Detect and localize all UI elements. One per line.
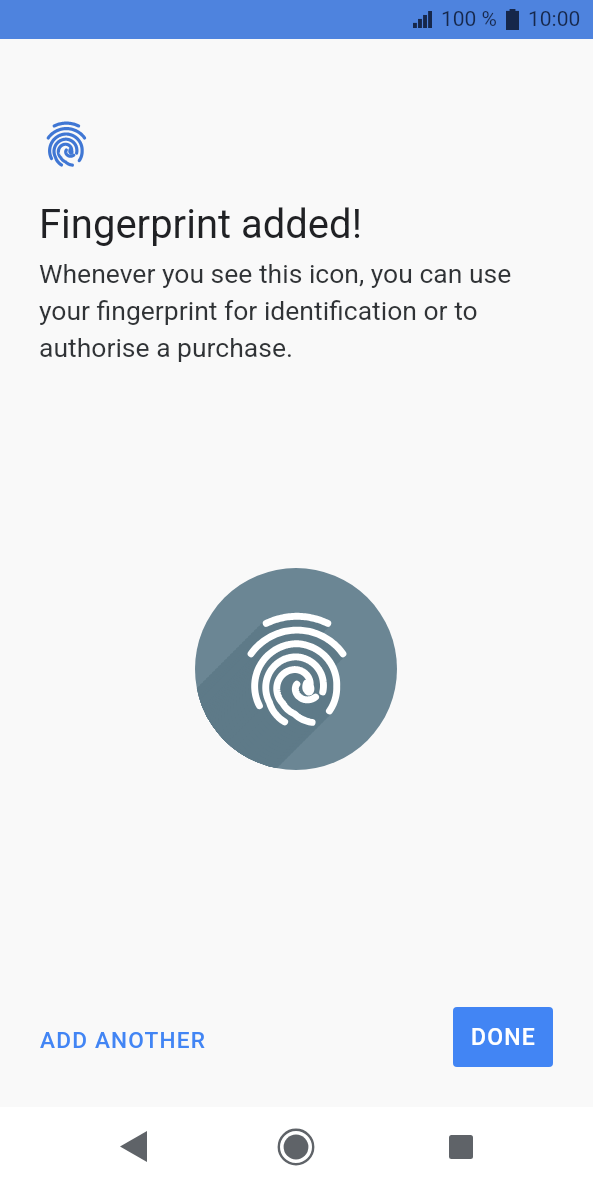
staticText: 100 % [441,7,497,32]
button[interactable]: ADD ANOTHER [24,1015,223,1065]
staticText: ADD ANOTHER [40,1027,207,1053]
staticText: Whenever you see this icon, you can use … [39,258,512,363]
staticText: 10:00 [528,7,581,32]
staticText: DONE [471,1024,536,1051]
button[interactable]: Back [93,1107,173,1186]
button[interactable]: Recent apps [421,1107,501,1186]
button[interactable]: Home [256,1107,336,1186]
button[interactable]: DONE [453,1007,553,1067]
staticText: Fingerprint added! [39,201,362,248]
